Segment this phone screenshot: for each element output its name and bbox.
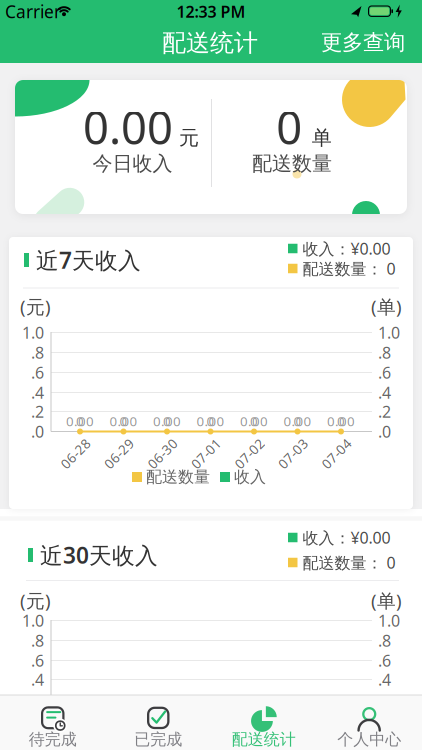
staticText: .4: [378, 382, 391, 403]
staticText: 收入：¥0.00: [302, 527, 390, 548]
staticText: .4: [31, 382, 44, 403]
staticText: 1.0: [22, 610, 44, 631]
staticText: 配送统计: [162, 28, 258, 58]
staticText: 0.00: [240, 412, 268, 430]
staticText: 0: [163, 412, 171, 430]
staticText: (元): [20, 294, 51, 319]
staticText: 0: [206, 412, 214, 430]
staticText: 配送数量: [252, 151, 332, 176]
staticText: 07-03: [275, 445, 311, 462]
staticText: (单): [371, 588, 402, 613]
staticText: 0: [293, 412, 301, 430]
staticText: 待完成: [29, 730, 77, 749]
staticText: .8: [378, 630, 391, 651]
staticText: 0.00: [66, 412, 94, 430]
staticText: 06-28: [57, 445, 93, 462]
staticText: 0: [337, 412, 345, 430]
staticText: .4: [378, 669, 391, 690]
staticText: 已完成: [134, 730, 182, 749]
staticText: 0.00: [153, 412, 181, 430]
staticText: 0: [276, 97, 302, 157]
staticText: .2: [31, 401, 44, 422]
staticText: 1.0: [378, 610, 400, 631]
staticText: (元): [20, 588, 51, 613]
staticText: 0: [119, 412, 127, 430]
staticText: 近7天收入: [36, 245, 141, 275]
staticText: 07-02: [231, 445, 267, 462]
staticText: 配送数量： 0: [302, 258, 395, 279]
staticText: .6: [31, 362, 44, 383]
staticText: 元: [179, 126, 199, 150]
staticText: 配送数量: [146, 467, 210, 487]
staticText: 配送数量： 0: [302, 552, 395, 573]
staticText: .8: [378, 342, 391, 363]
staticText: 1.0: [378, 322, 400, 343]
staticText: .8: [31, 630, 44, 651]
button[interactable]: 待完成: [1, 696, 105, 750]
staticText: .8: [31, 342, 44, 363]
staticText: 0: [76, 412, 84, 430]
button[interactable]: 更多查询: [308, 22, 418, 62]
staticText: .6: [378, 362, 391, 383]
staticText: .6: [378, 650, 391, 671]
staticText: 个人中心: [337, 730, 401, 749]
staticText: 0.00: [109, 412, 137, 430]
staticText: .4: [31, 669, 44, 690]
staticText: 更多查询: [321, 29, 405, 56]
staticText: Carrier: [5, 0, 61, 23]
staticText: 收入: [234, 467, 266, 487]
staticText: 06-29: [101, 445, 137, 462]
button[interactable]: 已完成: [106, 696, 210, 750]
staticText: 06-30: [144, 445, 180, 462]
button[interactable]: 配送统计: [212, 696, 316, 750]
staticText: 近30天收入: [40, 540, 158, 570]
staticText: (单): [371, 294, 402, 319]
staticText: 0.00: [83, 97, 173, 157]
staticText: 0: [250, 412, 258, 430]
staticText: 单: [312, 126, 332, 150]
staticText: 1.0: [22, 322, 44, 343]
staticText: .0: [31, 421, 44, 442]
staticText: 0.00: [196, 412, 224, 430]
staticText: 今日收入: [92, 151, 172, 176]
staticText: 07-04: [318, 445, 354, 462]
button[interactable]: 个人中心: [317, 696, 421, 750]
staticText: 12:33 PM: [176, 1, 245, 22]
staticText: .2: [378, 401, 391, 422]
staticText: 07-01: [188, 445, 224, 462]
staticText: .6: [31, 650, 44, 671]
staticText: 配送统计: [232, 730, 296, 749]
staticText: 收入：¥0.00: [302, 238, 390, 259]
staticText: 0.00: [283, 412, 311, 430]
staticText: 0.00: [327, 412, 355, 430]
staticText: .0: [378, 421, 391, 442]
